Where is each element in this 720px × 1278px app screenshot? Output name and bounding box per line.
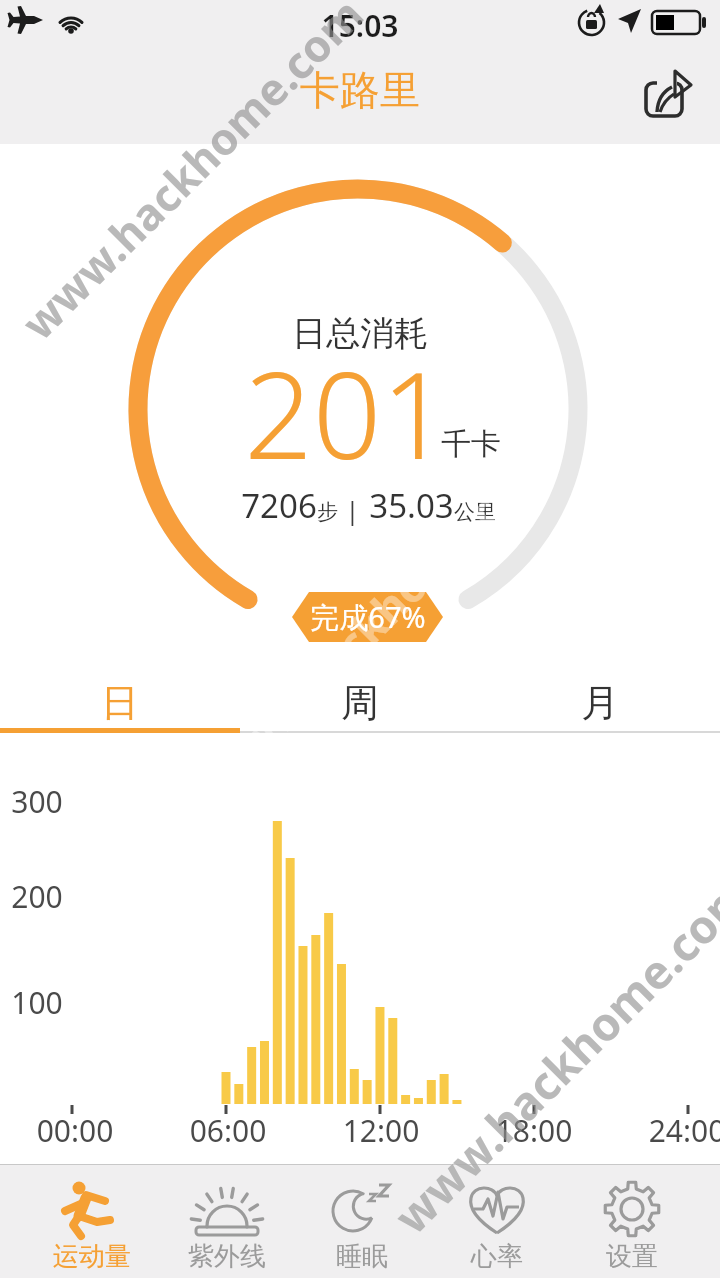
staticText: 24:00: [627, 1110, 720, 1151]
staticText: 7206: [241, 483, 317, 528]
staticText: www.hackhome.com: [196, 431, 564, 799]
staticText: 18:00: [474, 1110, 594, 1151]
button[interactable]: 周: [240, 669, 480, 737]
staticText: 睡眠: [336, 1240, 388, 1273]
staticText: 运动量: [53, 1240, 131, 1273]
staticText: 日: [101, 679, 139, 727]
button[interactable]: 日: [0, 669, 240, 737]
staticText: 200: [0, 876, 74, 917]
button[interactable]: 完成67%: [292, 592, 443, 642]
staticText: 千卡: [416, 425, 526, 463]
staticText: 心率: [471, 1240, 523, 1273]
staticText: 300: [0, 781, 74, 822]
staticText: www.hackhome.com: [380, 1164, 720, 1247]
staticText: 100: [0, 982, 74, 1023]
staticText: www.hackhome.com: [8, 0, 376, 352]
staticText: |: [345, 492, 360, 527]
staticText: 月: [581, 679, 619, 727]
staticText: 紫外线: [188, 1240, 266, 1273]
staticText: 日总消耗: [0, 312, 720, 355]
staticText: 公里: [454, 499, 496, 525]
staticText: 00:00: [15, 1110, 135, 1151]
staticText: www.hackhome.com: [380, 862, 720, 1247]
staticText: 步: [317, 499, 338, 525]
staticText: 15:03: [0, 5, 720, 46]
button[interactable]: 月: [480, 669, 720, 737]
button[interactable]: 紫外线: [159, 1164, 294, 1278]
button[interactable]: 运动量: [24, 1164, 159, 1278]
staticText: 12:00: [321, 1110, 441, 1151]
button[interactable]: 设置: [564, 1164, 699, 1278]
button[interactable]: 睡眠: [294, 1164, 429, 1278]
staticText: 06:00: [168, 1110, 288, 1151]
button[interactable]: 心率: [429, 1164, 564, 1278]
staticText: 周: [341, 679, 379, 727]
staticText: 201: [0, 331, 707, 494]
staticText: 设置: [606, 1240, 658, 1273]
button[interactable]: [636, 62, 700, 126]
staticText: 卡路里: [0, 65, 720, 115]
staticText: 完成67%: [310, 597, 426, 637]
staticText: 35.03: [369, 483, 454, 528]
